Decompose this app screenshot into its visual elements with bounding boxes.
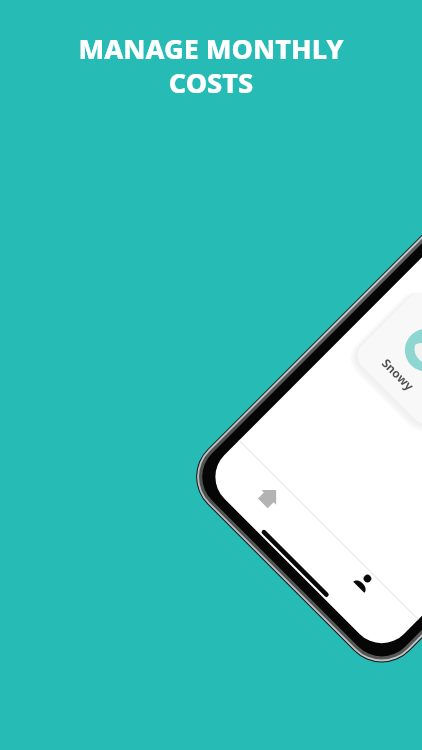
staticText: MANAGE MONTHLY COSTS bbox=[0, 30, 422, 101]
